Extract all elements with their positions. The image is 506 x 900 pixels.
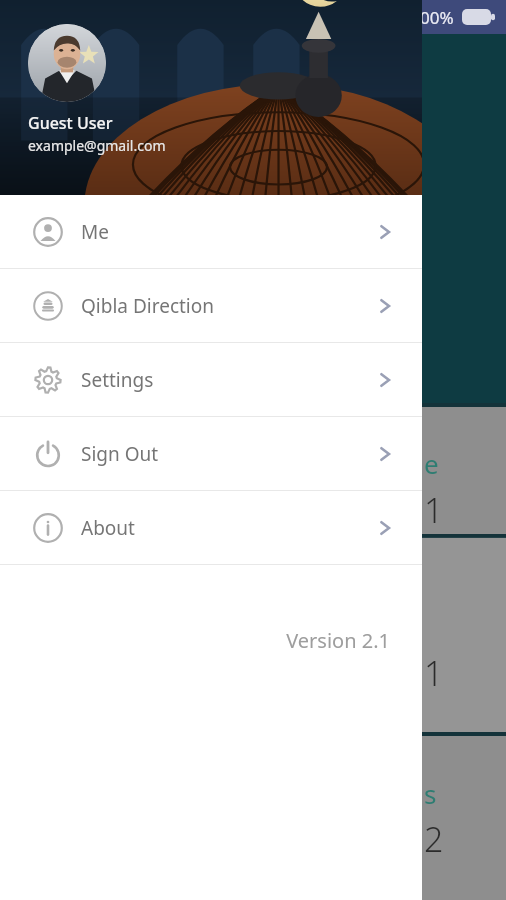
- staticText: Guest User: [28, 112, 113, 134]
- staticText: 1: [424, 487, 444, 533]
- button[interactable]: Me: [0, 195, 422, 268]
- staticText: About: [81, 515, 135, 541]
- staticText: 1: [424, 650, 444, 696]
- button[interactable]: Sign Out: [0, 417, 422, 490]
- button[interactable]: Settings: [0, 343, 422, 416]
- staticText: example@gmail.com: [28, 136, 166, 155]
- staticText: Version 2.1: [0, 627, 390, 654]
- button[interactable]: Profile photo: [0, 0, 422, 195]
- staticText: Sign Out: [81, 441, 159, 467]
- button[interactable]: Profile photo: [28, 24, 106, 102]
- staticText: s: [424, 776, 437, 811]
- staticText: Settings: [81, 367, 154, 393]
- staticText: Me: [81, 219, 109, 245]
- button[interactable]: Qibla Direction: [0, 269, 422, 342]
- button[interactable]: About: [0, 491, 422, 564]
- staticText: 2: [424, 816, 444, 862]
- staticText: Qibla Direction: [81, 293, 215, 319]
- staticText: e: [424, 446, 439, 481]
- staticText: 00%: [420, 6, 454, 29]
